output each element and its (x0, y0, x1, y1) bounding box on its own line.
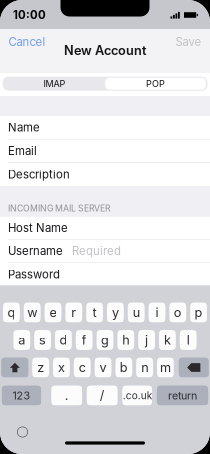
staticText: i (155, 305, 158, 320)
button[interactable]: y (107, 302, 124, 322)
staticText: q (7, 305, 15, 320)
staticText: return (168, 389, 197, 402)
staticText: f (82, 332, 87, 348)
staticText: g (101, 332, 109, 348)
staticText: o (174, 305, 182, 320)
staticText: Host Name (8, 221, 68, 235)
button[interactable]: .co.uk (122, 385, 152, 405)
button[interactable]: o (169, 302, 186, 322)
button[interactable]: b (115, 357, 132, 377)
staticText: Username (8, 244, 63, 258)
button[interactable]: IMAP (4, 78, 105, 90)
staticText: IMAP (43, 78, 65, 89)
button[interactable]: j (138, 330, 155, 350)
button[interactable]: i (149, 302, 165, 322)
button[interactable]: 123 (2, 385, 41, 405)
button[interactable]: Save (169, 34, 210, 50)
button[interactable]: d (55, 330, 72, 350)
staticText: m (160, 360, 171, 375)
button[interactable]: p (190, 302, 207, 322)
staticText: k (164, 332, 171, 348)
staticText: w (27, 305, 37, 320)
staticText: n (141, 360, 148, 375)
staticText: Save (175, 35, 201, 49)
staticText: j (145, 332, 148, 348)
staticText: Cancel (8, 35, 45, 49)
button[interactable]: z (32, 357, 49, 377)
button[interactable]: . (51, 385, 82, 405)
button[interactable]: / (87, 385, 118, 405)
staticText: e (49, 305, 56, 320)
button[interactable]: s (34, 330, 51, 350)
staticText: . (65, 388, 69, 403)
staticText: v (100, 360, 107, 375)
button[interactable]: g (97, 330, 113, 350)
staticText: z (37, 360, 44, 375)
staticText: l (187, 332, 190, 348)
button[interactable]: q (3, 302, 20, 322)
staticText: Email (8, 144, 37, 158)
button[interactable]: Shift (1, 357, 29, 377)
staticText: a (18, 332, 25, 348)
button[interactable]: t (86, 302, 103, 322)
button[interactable]: e (45, 302, 61, 322)
staticText: INCOMING MAIL SERVER (8, 203, 111, 213)
button[interactable]: m (157, 357, 174, 377)
staticText: POP (146, 78, 165, 89)
button[interactable]: l (180, 330, 197, 350)
button[interactable]: Delete (179, 357, 209, 377)
staticText: .co.uk (123, 389, 152, 402)
staticText: r (71, 305, 76, 320)
button[interactable]: c (74, 357, 91, 377)
staticText: / (100, 388, 105, 403)
staticText: d (59, 332, 67, 348)
staticText: x (58, 360, 65, 375)
staticText: New Account (64, 43, 146, 58)
staticText: t (93, 305, 97, 320)
staticText: 10:00 (13, 8, 46, 22)
button[interactable]: a (13, 330, 30, 350)
staticText: s (39, 332, 46, 348)
button[interactable]: v (95, 357, 111, 377)
button[interactable]: return (157, 385, 208, 405)
staticText: u (133, 305, 140, 320)
button[interactable]: x (53, 357, 70, 377)
staticText: Name (8, 121, 40, 134)
button[interactable]: f (76, 330, 93, 350)
staticText: p (195, 305, 203, 320)
button[interactable]: k (159, 330, 176, 350)
button[interactable]: Emoji keyboard (16, 425, 29, 438)
button[interactable]: h (117, 330, 134, 350)
staticText: y (112, 305, 119, 320)
button[interactable]: Cancel (0, 34, 51, 50)
button[interactable]: POP (105, 78, 206, 90)
staticText: Required (72, 244, 121, 258)
staticText: c (79, 360, 86, 375)
button[interactable]: n (136, 357, 153, 377)
staticText: Password (8, 268, 60, 281)
button[interactable]: r (65, 302, 82, 322)
staticText: h (122, 332, 129, 348)
button[interactable]: w (24, 302, 41, 322)
button[interactable]: u (128, 302, 145, 322)
staticText: 123 (12, 389, 30, 402)
staticText: Description (8, 168, 70, 181)
staticText: b (120, 360, 128, 375)
